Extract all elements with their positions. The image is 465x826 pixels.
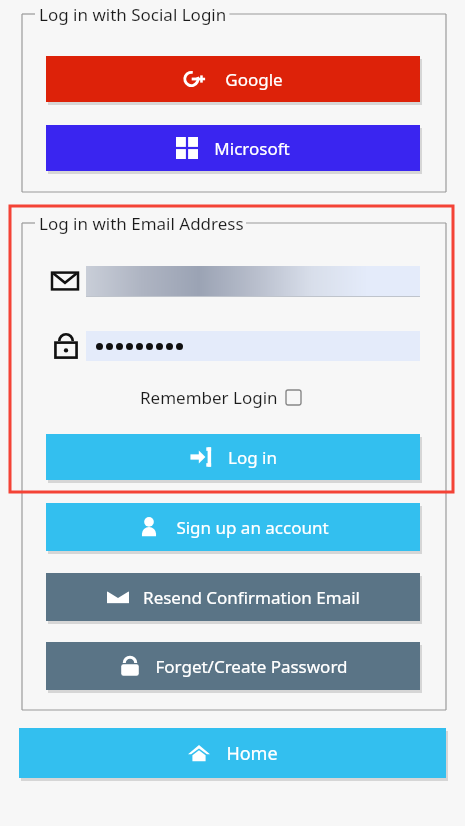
button[interactable]: Google — [46, 56, 420, 102]
button[interactable]: Resend Confirmation Email — [46, 573, 420, 621]
button[interactable]: Microsoft — [46, 125, 420, 171]
staticText: Google — [225, 68, 283, 91]
staticText: Log in — [228, 446, 277, 469]
button[interactable]: Remember Login — [140, 384, 301, 410]
staticText: Microsoft — [214, 137, 290, 160]
button[interactable]: Sign up an account — [46, 503, 420, 551]
staticText: Forget/Create Password — [155, 655, 348, 678]
staticText: Home — [226, 741, 278, 766]
button[interactable]: Home — [19, 728, 446, 778]
staticText: Remember Login — [140, 386, 278, 409]
button[interactable]: Forget/Create Password — [46, 642, 420, 690]
staticText: Sign up an account — [176, 516, 329, 539]
staticText: Log in with Social Login — [39, 3, 227, 26]
button[interactable]: Log in — [46, 434, 420, 480]
button[interactable]: Password field — [86, 331, 420, 361]
staticText: Log in with Email Address — [39, 212, 244, 235]
staticText: Resend Confirmation Email — [143, 586, 360, 609]
button[interactable]: Email address field — [86, 266, 420, 296]
